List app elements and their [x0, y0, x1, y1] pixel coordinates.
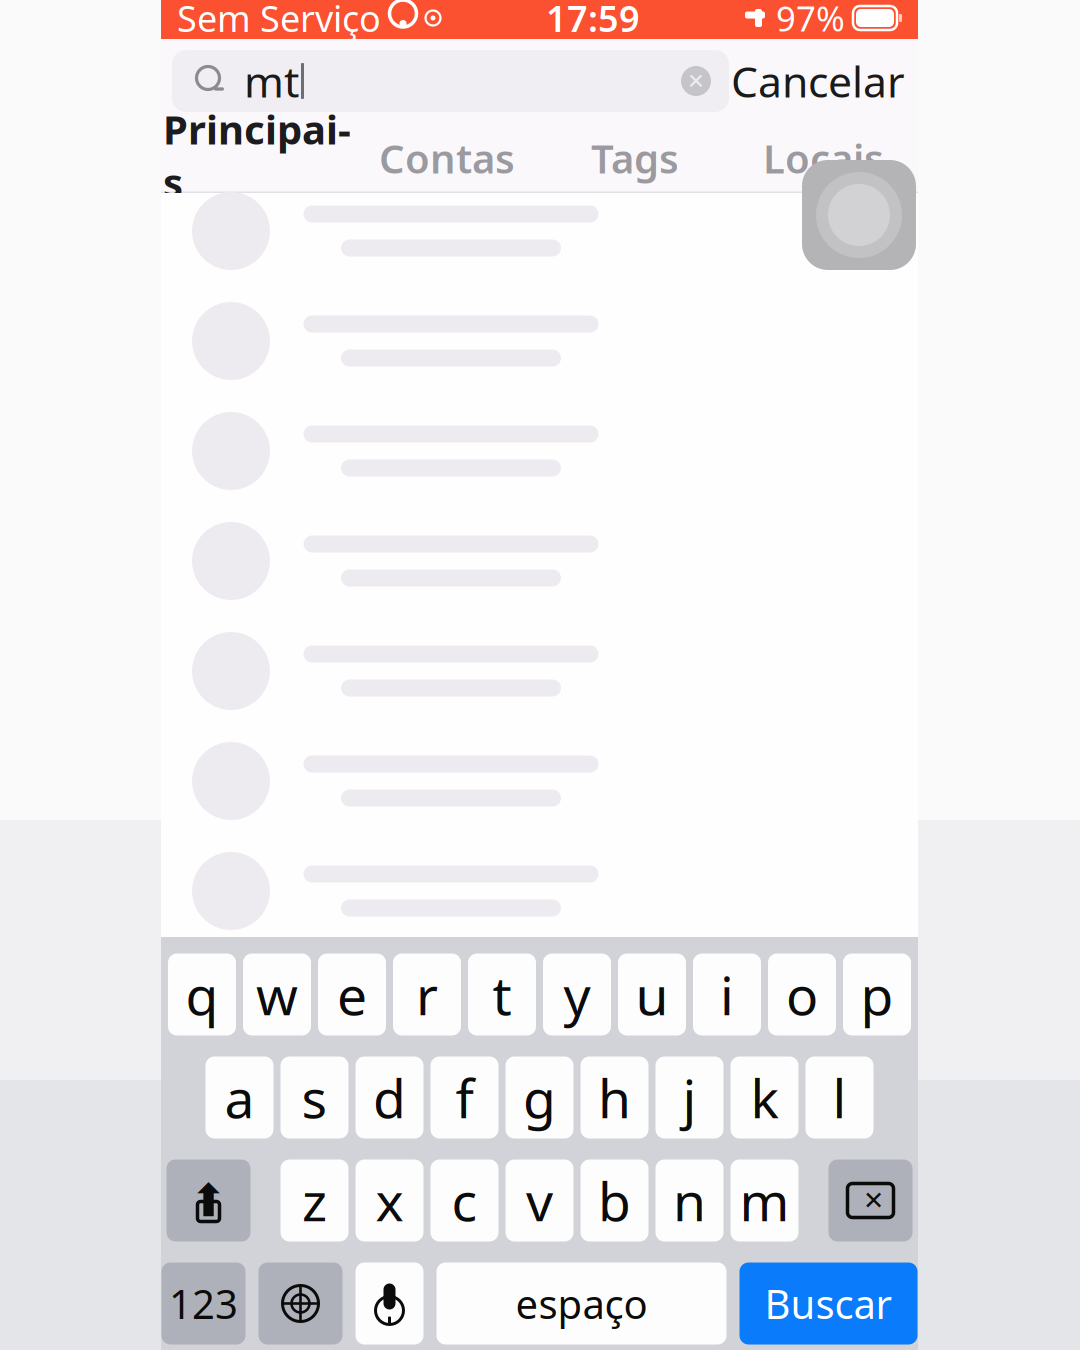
button[interactable]: n — [655, 1159, 723, 1241]
button[interactable]: x — [355, 1159, 423, 1241]
staticText: y — [563, 959, 590, 1030]
staticText: w — [256, 959, 298, 1030]
staticText: h — [598, 1062, 631, 1133]
staticText: s — [301, 1062, 327, 1133]
staticText: k — [750, 1062, 778, 1133]
button[interactable]: l — [805, 1056, 873, 1138]
button[interactable]: s — [280, 1056, 348, 1138]
staticText: Sem Serviço — [177, 0, 381, 42]
button[interactable]: mt — [172, 50, 729, 112]
staticText: 123 — [169, 1277, 238, 1330]
staticText: p — [860, 959, 893, 1030]
button[interactable]: v — [505, 1159, 573, 1241]
button[interactable]: f — [430, 1056, 498, 1138]
staticText: z — [302, 1165, 327, 1236]
staticText: t — [492, 959, 511, 1030]
staticText: espaço — [515, 1277, 647, 1330]
button[interactable]: r — [393, 953, 461, 1035]
staticText: c — [451, 1165, 477, 1236]
button[interactable]: d — [355, 1056, 423, 1138]
button[interactable]: w — [243, 953, 311, 1035]
staticText: mt — [244, 53, 299, 109]
button[interactable]: o — [768, 953, 836, 1035]
staticText: ✕ — [863, 1186, 884, 1215]
button[interactable]: e — [318, 953, 386, 1035]
button[interactable]: c — [430, 1159, 498, 1241]
button[interactable]: k — [730, 1056, 798, 1138]
button[interactable]: Change keyboard — [258, 1262, 342, 1344]
staticText: q — [185, 959, 218, 1030]
button[interactable]: Buscar — [739, 1262, 917, 1344]
button[interactable]: b — [580, 1159, 648, 1241]
button[interactable]: u — [618, 953, 686, 1035]
staticText: m — [739, 1165, 789, 1236]
button[interactable]: Tags — [541, 123, 729, 193]
button[interactable]: Shift — [166, 1159, 250, 1241]
staticText: g — [523, 1062, 556, 1133]
staticText: 17:59 — [546, 0, 640, 42]
button[interactable]: Cancelar — [729, 50, 907, 112]
button[interactable]: espaço — [436, 1262, 726, 1344]
staticText: Contas — [379, 131, 515, 184]
button[interactable]: a — [205, 1056, 273, 1138]
staticText: 97% — [767, 0, 845, 41]
button[interactable]: p — [843, 953, 911, 1035]
staticText: ⬆ — [189, 1175, 227, 1226]
staticText: Buscar — [764, 1277, 892, 1330]
staticText: i — [720, 959, 734, 1030]
button[interactable]: z — [280, 1159, 348, 1241]
button[interactable]: Locais — [729, 123, 918, 193]
staticText: l — [832, 1062, 846, 1133]
staticText: o — [786, 959, 818, 1030]
staticText — [381, 0, 388, 36]
staticText: Tags — [591, 131, 679, 184]
button[interactable]: Dictation — [355, 1262, 423, 1344]
staticText: x — [375, 1165, 403, 1236]
staticText: e — [337, 959, 367, 1030]
staticText: b — [598, 1165, 631, 1236]
button[interactable]: Contas — [353, 123, 541, 193]
button[interactable]: m — [730, 1159, 798, 1241]
staticText: Principais — [163, 102, 351, 209]
button[interactable]: j — [655, 1056, 723, 1138]
staticText: u — [635, 959, 668, 1030]
button[interactable]: q — [168, 953, 236, 1035]
staticText: d — [373, 1062, 406, 1133]
button[interactable]: h — [580, 1056, 648, 1138]
staticText: n — [673, 1165, 706, 1236]
staticText: v — [526, 1165, 553, 1236]
button[interactable]: Principais — [161, 123, 353, 193]
button[interactable]: Numbers — [161, 1262, 245, 1344]
button[interactable]: g — [505, 1056, 573, 1138]
staticText: a — [224, 1062, 254, 1133]
staticText — [418, 6, 423, 30]
staticText: f — [455, 1062, 473, 1133]
staticText: j — [682, 1062, 696, 1133]
staticText: r — [416, 959, 438, 1030]
button[interactable]: Backspace — [828, 1159, 912, 1241]
button[interactable]: i — [693, 953, 761, 1035]
staticText: Locais — [763, 131, 884, 184]
staticText: Cancelar — [731, 53, 905, 109]
button[interactable]: t — [468, 953, 536, 1035]
button[interactable]: y — [543, 953, 611, 1035]
staticText: ✕ — [687, 69, 705, 93]
